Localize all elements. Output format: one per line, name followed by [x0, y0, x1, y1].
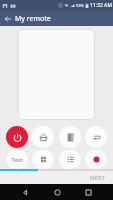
button[interactable]: Back: [18, 185, 32, 199]
button[interactable]: [18, 29, 95, 120]
button[interactable]: Record: [85, 150, 107, 169]
staticText: My remote: [15, 14, 51, 24]
button[interactable]: Guide: [59, 126, 81, 148]
button[interactable]: List: [59, 150, 81, 169]
button[interactable]: Power: [6, 126, 28, 148]
staticText: 11:32 AM: [90, 2, 112, 9]
staticText: Text: [11, 156, 23, 164]
button[interactable]: NEXT: [83, 172, 113, 184]
button[interactable]: Back: [0, 11, 15, 26]
button[interactable]: Home: [50, 185, 64, 199]
button[interactable]: Back: [85, 126, 107, 148]
staticText: NEXT: [90, 174, 106, 182]
button[interactable]: Text: [6, 150, 28, 169]
staticText: 53%: [76, 3, 84, 8]
button[interactable]: Recent apps: [81, 185, 95, 199]
button[interactable]: Home: [32, 126, 54, 148]
button[interactable]: Keypad: [32, 150, 54, 169]
